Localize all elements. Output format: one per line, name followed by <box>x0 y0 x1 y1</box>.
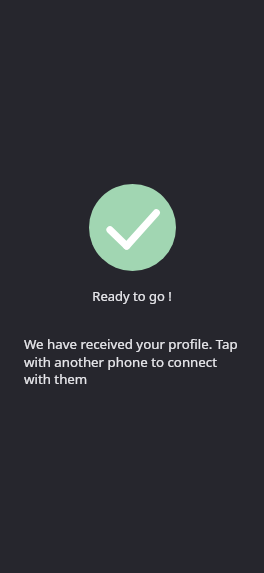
staticText: We have received your profile. Tap with … <box>24 335 242 388</box>
other: Profile received <box>89 184 176 271</box>
staticText: Ready to go ! <box>92 287 172 305</box>
